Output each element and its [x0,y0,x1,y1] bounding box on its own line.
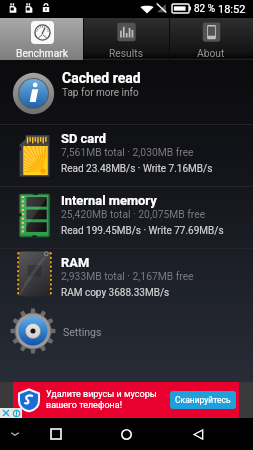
button[interactable]: About [169,18,253,60]
button[interactable]: Benchmark [0,18,83,60]
button[interactable]: Ad info [11,408,22,418]
button[interactable]: Recents [36,418,76,450]
staticText: Удалите вирусы и мусоры [46,389,157,400]
button[interactable]: SD card [0,125,253,186]
button[interactable]: Cached read [0,63,253,124]
staticText: Results [109,47,143,59]
button[interactable]: Settings [0,311,253,365]
staticText: 25,420MB total · 20,075MB free [61,208,206,220]
staticText: RAM [61,255,90,270]
button[interactable]: Close ad [0,408,11,418]
staticText: Cached read [62,70,141,86]
button[interactable]: Home [106,418,146,450]
staticText: SD card [61,131,106,146]
button[interactable]: Results [83,18,169,60]
staticText: 7,561MB total · 2,030MB free [61,146,194,158]
staticText: Сканируйтесь [175,395,231,405]
staticText: About [197,47,225,59]
staticText: Read 23.48MB/s · Write 7.16MB/s [61,163,213,175]
staticText: Internal memory [61,193,157,208]
button[interactable]: Hide keyboard [0,418,30,450]
staticText: Benchmark [16,47,68,59]
staticText: 2,933MB total · 2,167MB free [61,270,194,282]
staticText: вашего телефона! [46,400,122,411]
staticText: Read 199.45MB/s · Write 77.69MB/s [61,225,224,237]
staticText: Tap for more info [62,87,139,99]
staticText: Settings [63,326,102,338]
staticText: 18:52 [218,3,246,16]
button[interactable]: Сканируйтесь [170,391,236,409]
button[interactable]: RAM [0,249,253,310]
button[interactable]: Back [178,418,218,450]
button[interactable]: Удалите вирусы и мусоры [13,382,239,418]
button[interactable]: Internal memory [0,187,253,248]
staticText: RAM copy 3688.33MB/s [61,287,170,299]
staticText: 82 % [194,3,216,15]
